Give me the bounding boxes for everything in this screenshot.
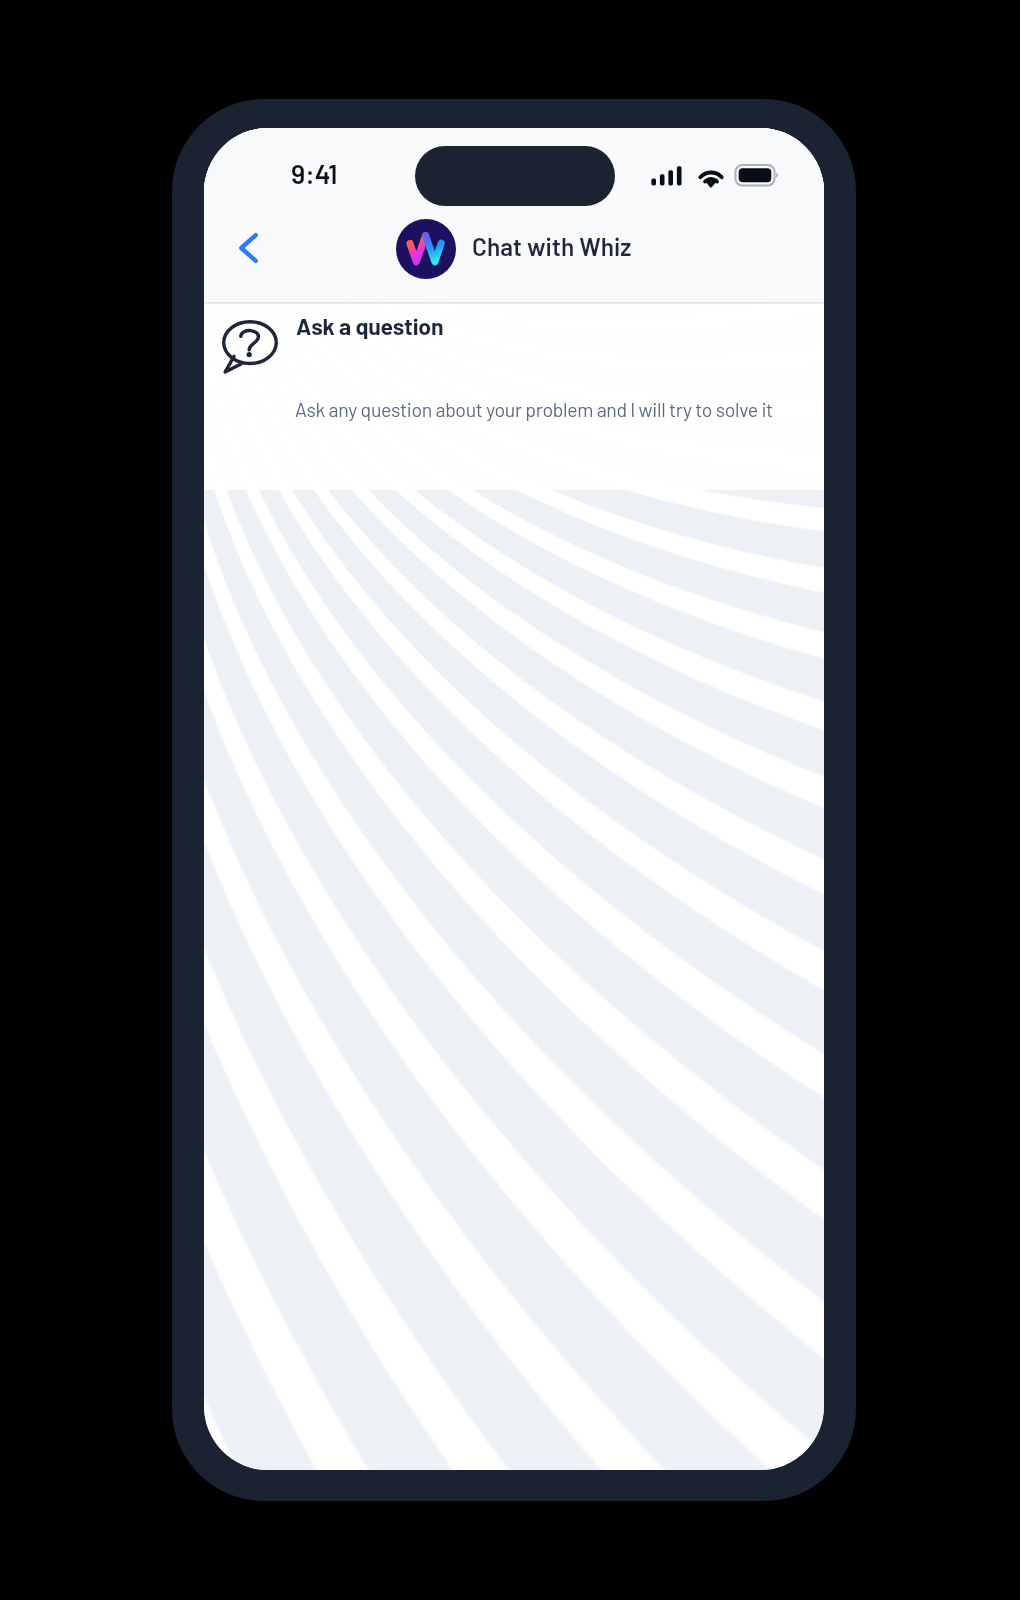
staticText: 9:41 [291,157,338,189]
staticText: Ask a question [296,312,444,340]
button[interactable]: Back [214,214,282,282]
staticText: Ask any question about your problem and … [295,397,773,420]
staticText: Chat with Whiz [472,231,632,260]
